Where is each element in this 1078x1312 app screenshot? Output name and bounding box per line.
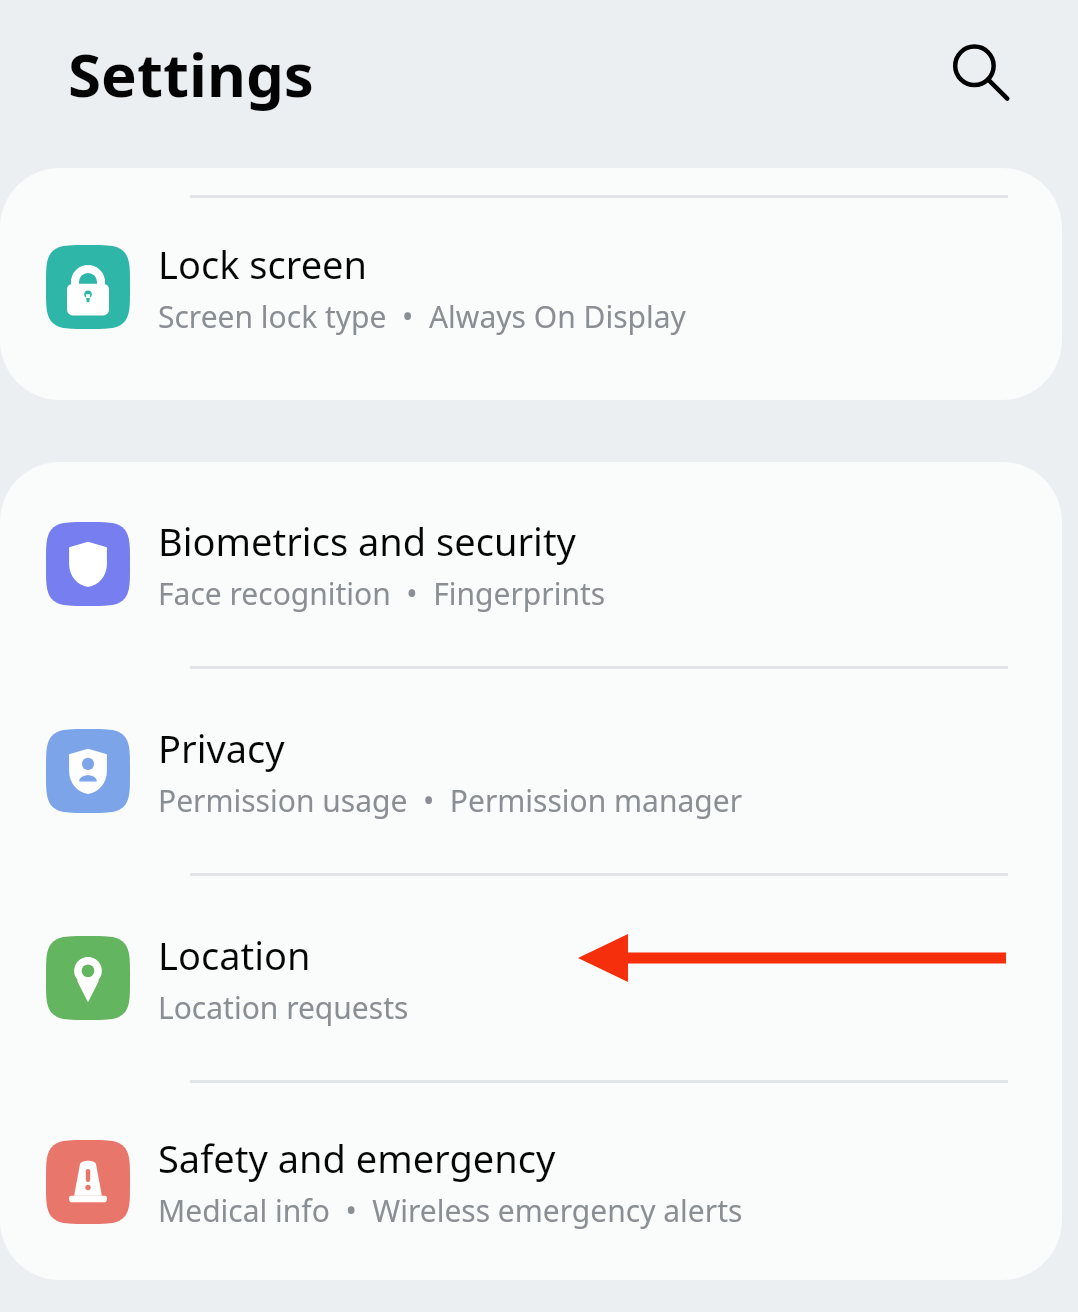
button[interactable]: Location (0, 876, 1062, 1080)
staticText: Privacy (158, 722, 285, 774)
staticText: Location requests (158, 987, 409, 1028)
staticText: Settings (68, 33, 314, 115)
button[interactable]: Search (930, 22, 1030, 122)
staticText: Biometrics and security (158, 515, 577, 567)
staticText: Face recognition • Fingerprints (158, 573, 606, 614)
button[interactable]: Lock screen (0, 198, 1062, 376)
staticText: Lock screen (158, 238, 368, 290)
button[interactable]: Safety and emergency (0, 1083, 1062, 1280)
staticText: Safety and emergency (158, 1132, 556, 1184)
button[interactable]: Biometrics and security (0, 462, 1062, 666)
staticText: Screen lock type • Always On Display (158, 296, 686, 337)
staticText: Location (158, 929, 311, 981)
staticText: Permission usage • Permission manager (158, 780, 743, 821)
button[interactable]: Privacy (0, 669, 1062, 873)
staticText: Medical info • Wireless emergency alerts (158, 1190, 743, 1231)
